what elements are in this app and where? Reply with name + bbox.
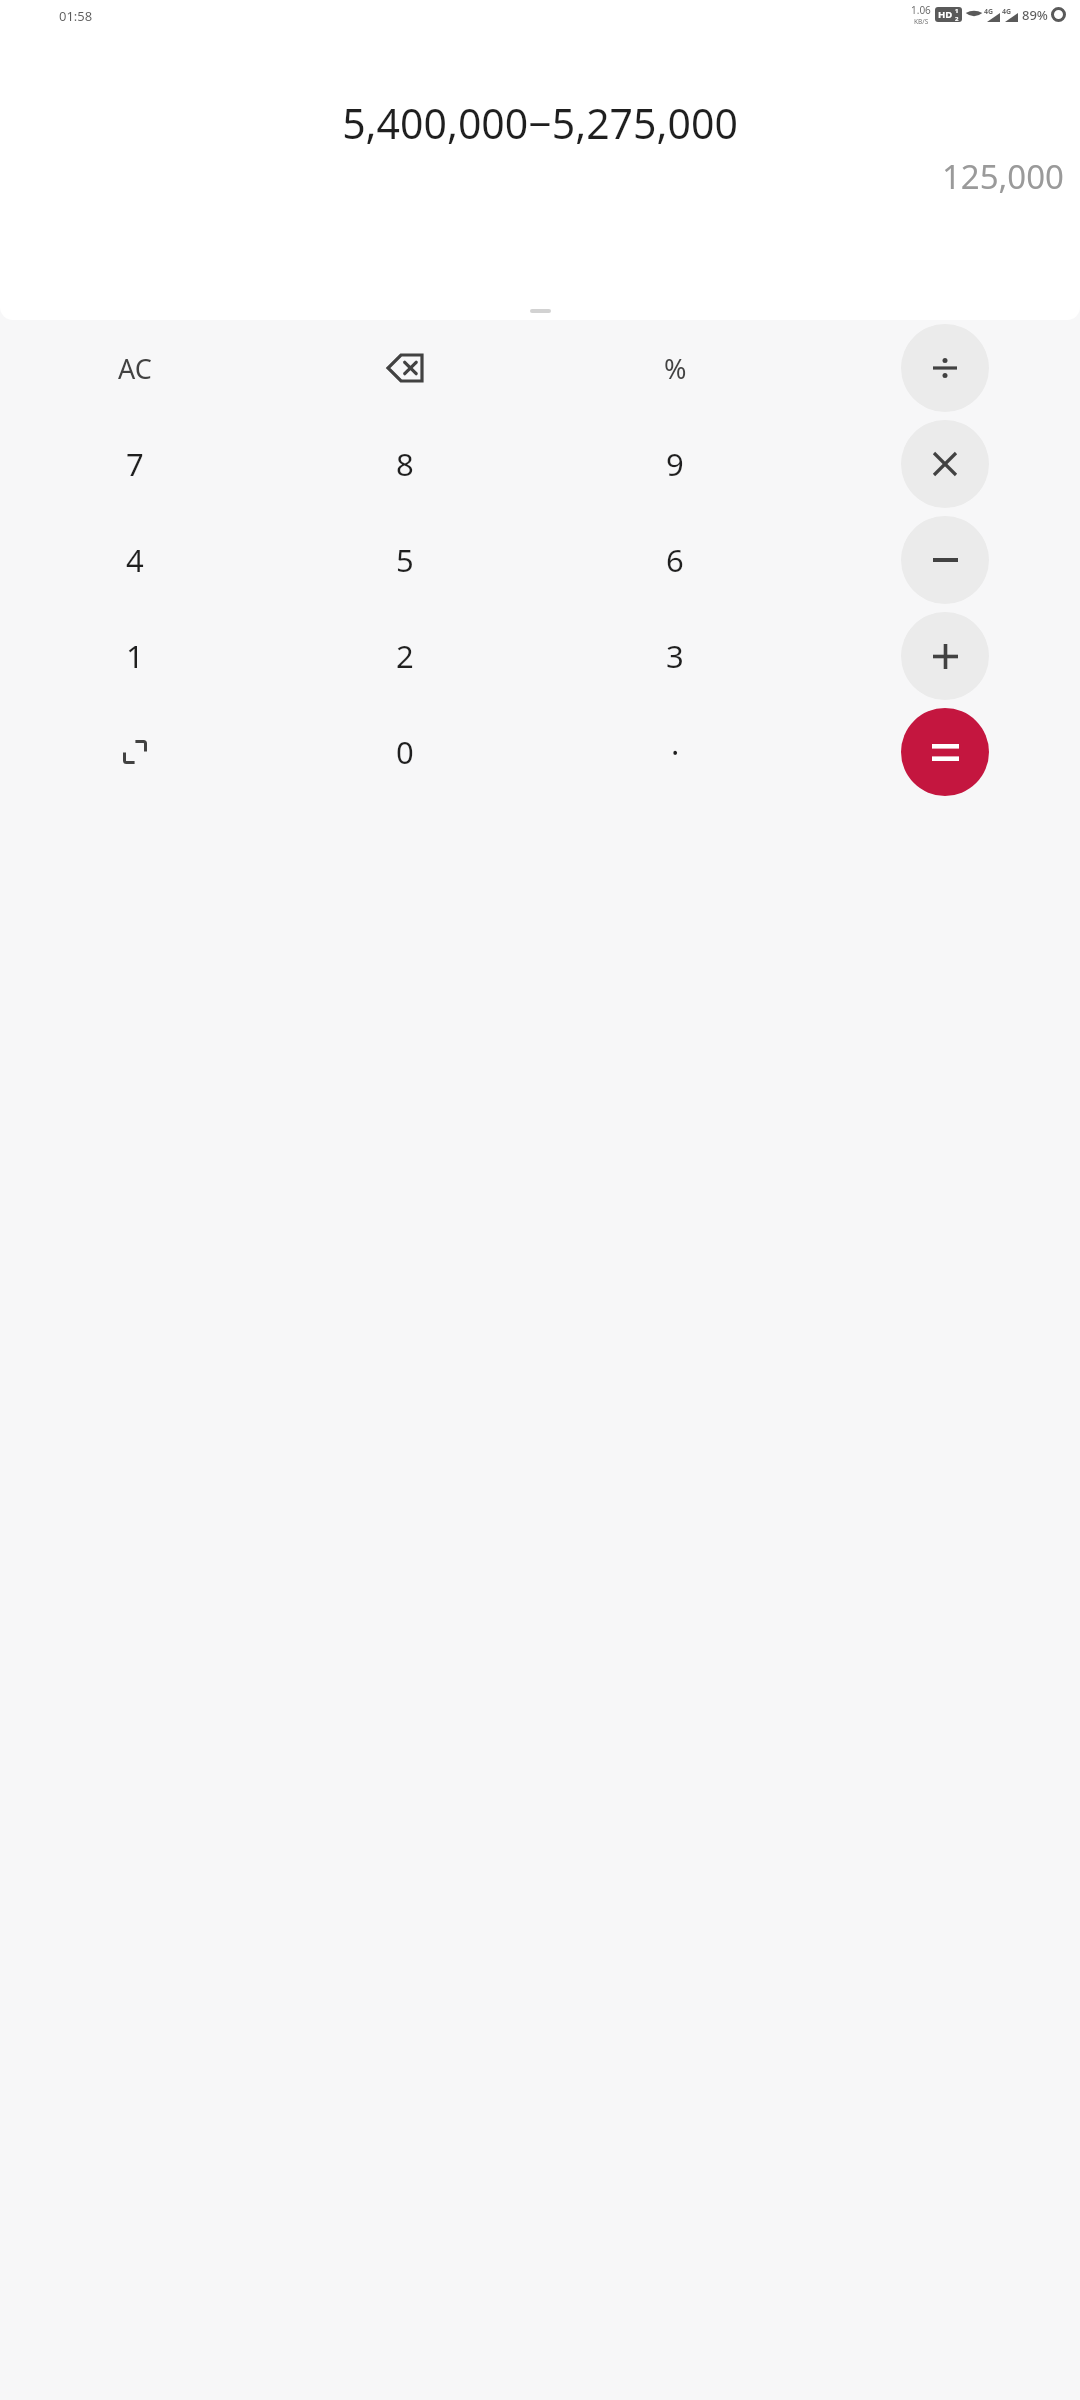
- staticText: AC: [118, 350, 152, 387]
- button[interactable]: Backspace: [361, 324, 449, 412]
- button[interactable]: 8: [361, 420, 449, 508]
- staticText: 0: [396, 731, 414, 773]
- staticText: 1: [955, 7, 959, 15]
- staticText: 7: [126, 443, 144, 485]
- button[interactable]: 6: [631, 516, 719, 604]
- staticText: 1: [126, 635, 144, 677]
- staticText: 2: [396, 635, 414, 677]
- staticText: 125,000: [0, 154, 1064, 199]
- button[interactable]: %: [631, 324, 719, 412]
- staticText: 8: [396, 443, 414, 485]
- button[interactable]: 7: [91, 420, 179, 508]
- staticText: 5: [396, 539, 414, 581]
- button[interactable]: 4: [91, 516, 179, 604]
- staticText: 5,400,000−5,275,000: [18, 95, 1062, 151]
- staticText: 4G: [1002, 7, 1012, 17]
- staticText: 4G: [984, 7, 994, 17]
- staticText: 6: [666, 539, 684, 581]
- staticText: 01:58: [59, 7, 93, 25]
- staticText: 9: [666, 443, 684, 485]
- staticText: ·: [671, 731, 680, 773]
- staticText: 2: [955, 15, 959, 22]
- button[interactable]: 9: [631, 420, 719, 508]
- button[interactable]: AC: [91, 324, 179, 412]
- button[interactable]: [530, 309, 551, 313]
- staticText: 1.06: [911, 3, 931, 17]
- staticText: %: [664, 350, 687, 387]
- button[interactable]: 5: [361, 516, 449, 604]
- button[interactable]: Plus: [901, 612, 989, 700]
- button[interactable]: 0: [361, 708, 449, 796]
- button[interactable]: 2: [361, 612, 449, 700]
- staticText: HD: [938, 8, 953, 21]
- button[interactable]: Expand: [91, 708, 179, 796]
- button[interactable]: Divide: [901, 324, 989, 412]
- staticText: 4: [126, 539, 144, 581]
- staticText: 3: [666, 635, 684, 677]
- button[interactable]: Multiply: [901, 420, 989, 508]
- button[interactable]: ·: [631, 708, 719, 796]
- button[interactable]: 3: [631, 612, 719, 700]
- button[interactable]: Minus: [901, 516, 989, 604]
- button[interactable]: Equals: [901, 708, 989, 796]
- button[interactable]: 1: [91, 612, 179, 700]
- staticText: 89%: [1022, 6, 1048, 24]
- staticText: KB/S: [914, 17, 929, 26]
